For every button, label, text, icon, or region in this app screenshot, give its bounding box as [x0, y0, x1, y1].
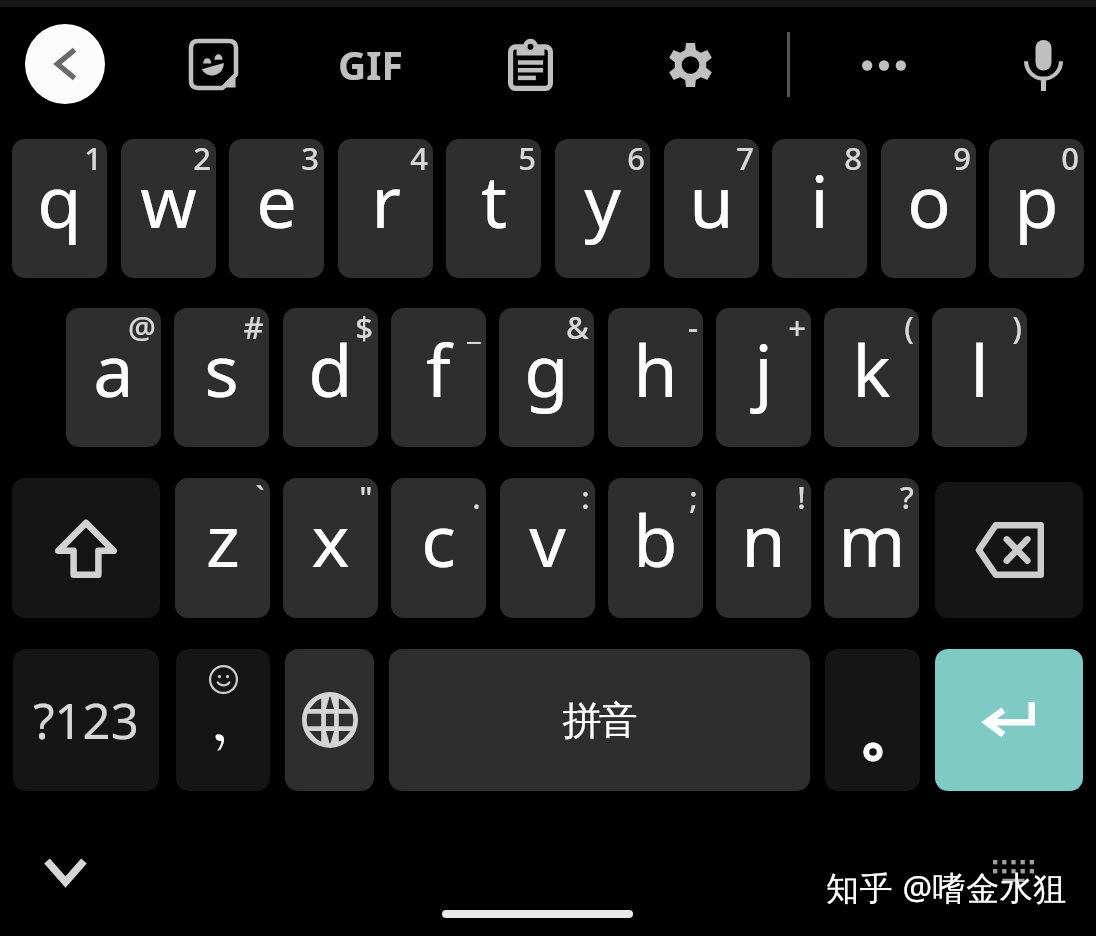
- staticText: 7: [736, 139, 754, 179]
- staticText: d: [308, 320, 353, 418]
- staticText: (: [904, 308, 914, 348]
- staticText: `: [255, 478, 265, 518]
- button[interactable]: GIF: [333, 30, 407, 98]
- staticText: q: [37, 151, 82, 249]
- staticText: x: [311, 490, 350, 588]
- button[interactable]: u: [664, 139, 759, 278]
- staticText: j: [754, 320, 773, 418]
- staticText: ?: [900, 478, 914, 518]
- button[interactable]: m: [824, 478, 919, 618]
- staticText: 8: [844, 139, 862, 179]
- button[interactable]: i: [772, 139, 867, 278]
- staticText: s: [204, 320, 239, 418]
- button[interactable]: Clipboard: [494, 30, 566, 98]
- button[interactable]: q: [12, 139, 107, 278]
- staticText: ;: [689, 478, 698, 518]
- staticText: v: [529, 490, 566, 588]
- staticText: 2: [193, 139, 211, 179]
- staticText: i: [810, 151, 829, 249]
- button[interactable]: p: [989, 139, 1084, 278]
- button[interactable]: r: [338, 139, 433, 278]
- staticText: 1: [84, 139, 102, 179]
- button[interactable]: w: [121, 139, 216, 278]
- staticText: t: [481, 151, 507, 249]
- staticText: .: [472, 478, 481, 518]
- staticText: a: [93, 320, 134, 418]
- button[interactable]: ?123: [13, 649, 159, 791]
- staticText: ": [359, 478, 373, 518]
- staticText: c: [421, 490, 456, 588]
- button[interactable]: Shift: [12, 478, 160, 618]
- staticText: _: [467, 308, 481, 348]
- button[interactable]: Settings: [654, 31, 726, 99]
- button[interactable]: e: [229, 139, 324, 278]
- button[interactable]: j: [716, 308, 811, 447]
- staticText: p: [1014, 151, 1059, 249]
- staticText: ): [1012, 308, 1022, 348]
- staticText: #: [243, 308, 264, 348]
- button[interactable]: f: [391, 308, 486, 447]
- button[interactable]: b: [608, 478, 703, 618]
- staticText: b: [633, 490, 678, 588]
- staticText: @: [128, 308, 156, 348]
- button[interactable]: t: [446, 139, 541, 278]
- staticText: w: [140, 151, 197, 249]
- staticText: n: [741, 490, 786, 588]
- button[interactable]: Comma, emoji: [176, 649, 270, 791]
- button[interactable]: z: [175, 478, 270, 618]
- staticText: 6: [627, 139, 645, 179]
- button[interactable]: Back: [25, 24, 105, 104]
- button[interactable]: Hide keyboard: [37, 845, 93, 897]
- staticText: 知乎 @嗜金水狙: [826, 865, 1068, 910]
- staticText: 5: [518, 139, 536, 179]
- staticText: l: [970, 320, 989, 418]
- button[interactable]: Stickers: [177, 30, 249, 98]
- staticText: k: [852, 320, 891, 418]
- button[interactable]: Enter: [935, 649, 1083, 791]
- staticText: r: [371, 151, 401, 249]
- button[interactable]: c: [391, 478, 486, 618]
- staticText: +: [788, 308, 806, 348]
- button[interactable]: Backspace: [935, 482, 1083, 618]
- staticText: h: [633, 320, 678, 418]
- staticText: m: [838, 490, 906, 588]
- button[interactable]: y: [555, 139, 650, 278]
- button[interactable]: Ideographic full stop: [825, 649, 920, 791]
- staticText: 4: [410, 139, 428, 179]
- staticText: f: [426, 320, 451, 418]
- staticText: g: [524, 320, 569, 418]
- staticText: 0: [1061, 139, 1079, 179]
- button[interactable]: h: [608, 308, 703, 447]
- button[interactable]: More options: [848, 31, 920, 99]
- staticText: z: [206, 490, 240, 588]
- staticText: 3: [301, 139, 319, 179]
- button[interactable]: s: [174, 308, 269, 447]
- button[interactable]: d: [283, 308, 378, 447]
- staticText: -: [688, 308, 698, 348]
- staticText: $: [355, 308, 373, 348]
- button[interactable]: Switch language: [285, 649, 374, 791]
- button[interactable]: a: [66, 308, 161, 447]
- button[interactable]: l: [932, 308, 1027, 447]
- button[interactable]: v: [500, 478, 595, 618]
- button[interactable]: o: [881, 139, 976, 278]
- staticText: o: [907, 151, 951, 249]
- staticText: :: [581, 478, 590, 518]
- button[interactable]: Voice input: [1007, 31, 1079, 99]
- staticText: y: [584, 151, 621, 249]
- staticText: &: [566, 308, 589, 348]
- staticText: ?123: [33, 687, 139, 754]
- staticText: 拼音: [564, 696, 636, 745]
- button[interactable]: n: [716, 478, 811, 618]
- staticText: 9: [953, 139, 971, 179]
- button[interactable]: k: [824, 308, 919, 447]
- button[interactable]: 拼音: [389, 649, 810, 791]
- staticText: GIF: [338, 38, 403, 91]
- staticText: u: [689, 151, 734, 249]
- button[interactable]: g: [499, 308, 594, 447]
- staticText: !: [797, 478, 806, 518]
- button[interactable]: x: [283, 478, 378, 618]
- staticText: e: [256, 151, 297, 249]
